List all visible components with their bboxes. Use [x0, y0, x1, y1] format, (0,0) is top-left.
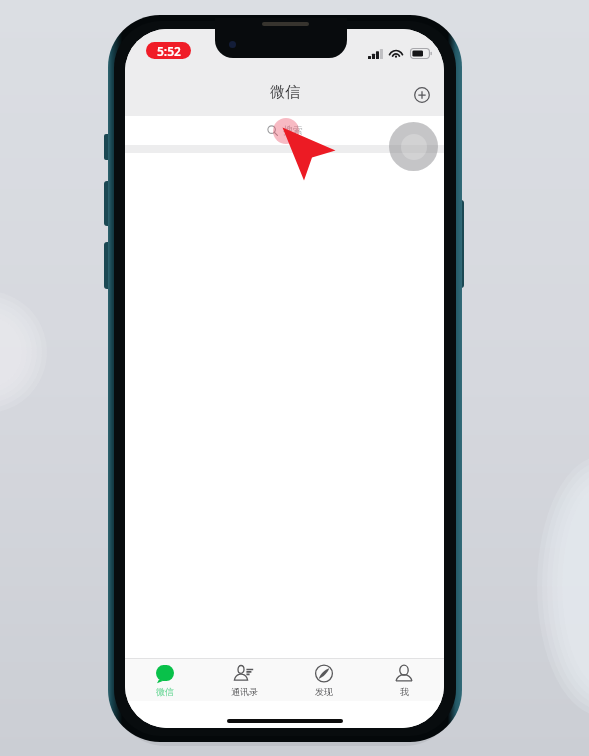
- button[interactable]: 搜索: [125, 116, 444, 145]
- staticText: 通讯录: [231, 686, 258, 697]
- button[interactable]: Add: [409, 82, 435, 108]
- button[interactable]: 通讯录: [204, 659, 284, 701]
- staticText: 微信: [270, 83, 300, 102]
- button[interactable]: 微信: [125, 659, 204, 701]
- staticText: 搜索: [283, 124, 303, 137]
- staticText: 5:52: [157, 43, 181, 59]
- staticText: 我: [400, 686, 409, 697]
- staticText: 发现: [315, 686, 333, 697]
- button[interactable]: 我: [364, 659, 444, 701]
- staticText: 微信: [156, 686, 174, 697]
- button[interactable]: 发现: [284, 659, 364, 701]
- button[interactable]: 5:52: [146, 42, 191, 59]
- button[interactable]: AssistiveTouch: [389, 122, 438, 171]
